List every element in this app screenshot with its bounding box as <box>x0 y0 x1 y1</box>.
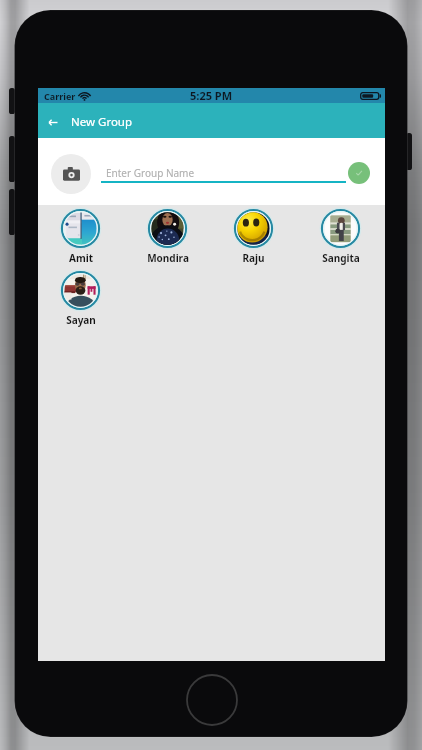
staticText: Carrier <box>44 90 76 102</box>
button[interactable]: Create group <box>348 162 370 184</box>
staticText: Raju <box>242 251 265 265</box>
button[interactable]: Sangita <box>297 208 384 265</box>
button[interactable]: Add group photo <box>51 154 91 194</box>
staticText: Sangita <box>322 251 360 265</box>
button[interactable]: Enter Group Name <box>101 161 346 183</box>
staticText: Enter Group Name <box>106 166 195 180</box>
button[interactable]: Raju <box>210 208 297 265</box>
button[interactable]: Mondira <box>124 208 211 265</box>
staticText: Mondira <box>147 251 189 265</box>
button[interactable]: Sayan <box>37 270 124 327</box>
staticText: 5:25 PM <box>190 88 233 103</box>
staticText: New Group <box>71 114 133 130</box>
button[interactable]: Amit <box>37 208 124 265</box>
button[interactable]: Back <box>38 105 67 139</box>
staticText: Amit <box>69 251 93 265</box>
staticText: Sayan <box>66 313 96 327</box>
